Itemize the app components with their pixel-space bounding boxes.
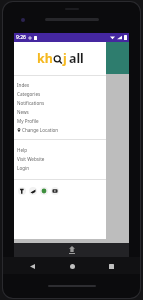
button[interactable]: Facebook <box>18 187 26 195</box>
staticText: Notifications <box>17 100 45 106</box>
staticText: all <box>69 50 84 67</box>
button[interactable]: Back <box>25 259 39 273</box>
button[interactable]: Index <box>14 80 106 89</box>
staticText: My Profile <box>17 118 39 124</box>
button[interactable]: Twitter <box>29 187 37 195</box>
staticText: kh <box>37 50 53 67</box>
button[interactable]: YouTube <box>51 187 59 195</box>
staticText: j <box>63 50 67 67</box>
button[interactable]: Language <box>18 61 41 66</box>
button[interactable]: My Profile <box>14 116 106 125</box>
button[interactable]: Help <box>14 145 106 154</box>
button[interactable]: WhatsApp <box>40 187 48 195</box>
button[interactable]: Visit Website <box>14 154 106 163</box>
button[interactable]: Recent apps <box>104 259 118 273</box>
staticText: News <box>17 109 29 115</box>
staticText: Change Location <box>22 127 59 133</box>
staticText: Login <box>17 165 30 171</box>
staticText: Index <box>17 82 30 88</box>
staticText: Help <box>17 147 28 153</box>
staticText: 9:26 <box>16 34 26 41</box>
button[interactable]: Categories <box>14 89 106 98</box>
staticText: Categories <box>17 91 41 97</box>
button[interactable]: Change Location <box>14 125 106 134</box>
button[interactable]: Home <box>65 259 79 273</box>
button[interactable]: Notifications <box>14 98 106 107</box>
button[interactable]: Login <box>14 163 106 172</box>
staticText: all <box>35 50 43 59</box>
staticText: Visit Website <box>17 156 45 162</box>
button[interactable]: News <box>14 107 106 116</box>
